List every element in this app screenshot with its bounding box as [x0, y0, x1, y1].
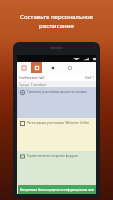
button[interactable]: Тренинги участников до шести человек — [17, 87, 96, 118]
staticText: Выстроенные бизнес-процессы на информаци… — [20, 188, 94, 192]
button[interactable]: Tab 3 — [64, 62, 76, 73]
staticText: Conference hall — [19, 75, 45, 80]
staticText: Составьте персональное — [20, 12, 93, 20]
staticText: Регистрация участников. Welcome Coffee — [27, 121, 90, 125]
staticText: Тренинги участников до шести человек — [27, 90, 87, 94]
button[interactable]: Торжественное открытие форума — [17, 151, 96, 185]
button[interactable]: Выстроенные бизнес-процессы на информаци… — [18, 185, 96, 194]
staticText: расписание — [39, 21, 74, 29]
button[interactable]: Tab 1 — [31, 62, 42, 73]
staticText: Hall 1 — [85, 75, 94, 80]
button[interactable]: Регистрация участников. Welcome Coffee — [17, 118, 96, 151]
staticText: Среда, 7 октября — [19, 82, 47, 86]
button[interactable]: Tab 2 — [47, 62, 59, 73]
staticText: Торжественное открытие форума — [27, 154, 78, 158]
button[interactable]: Tab 0 — [18, 62, 29, 73]
